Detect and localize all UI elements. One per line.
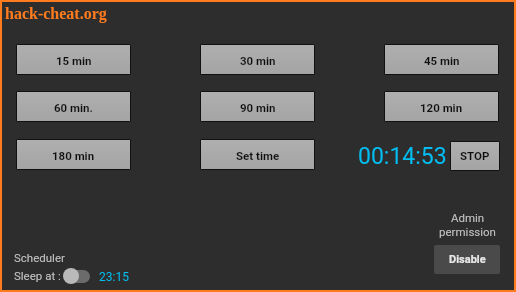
button[interactable]: STOP xyxy=(450,141,500,171)
staticText: 30 min xyxy=(240,54,276,67)
button[interactable]: Set time xyxy=(200,139,315,170)
staticText: 00:14:53 xyxy=(358,143,447,169)
button[interactable]: 120 min xyxy=(384,91,499,122)
button[interactable]: 23:15 xyxy=(99,268,129,284)
staticText: STOP xyxy=(460,149,490,162)
staticText: Sleep at : xyxy=(14,269,61,282)
staticText: 120 min xyxy=(420,101,463,114)
staticText: 15 min xyxy=(56,54,92,67)
staticText: 60 min. xyxy=(54,101,93,114)
button[interactable]: 15 min xyxy=(16,44,131,75)
button[interactable]: 45 min xyxy=(384,44,499,75)
button[interactable]: 90 min xyxy=(200,91,315,122)
button[interactable]: 30 min xyxy=(200,44,315,75)
staticText: Admin permission xyxy=(439,211,496,239)
staticText: 45 min xyxy=(424,54,460,67)
button[interactable]: 60 min. xyxy=(16,91,131,122)
staticText: Disable xyxy=(449,253,486,266)
staticText: 180 min xyxy=(52,149,95,162)
staticText: 90 min xyxy=(240,101,276,114)
button[interactable]: Disable xyxy=(434,245,500,274)
button[interactable]: Sleep at toggle xyxy=(63,268,91,284)
staticText: hack-cheat.org xyxy=(5,5,107,23)
staticText: 23:15 xyxy=(99,270,129,284)
staticText: Set time xyxy=(236,149,280,162)
button[interactable]: 180 min xyxy=(16,139,131,170)
staticText: Scheduler xyxy=(14,251,65,264)
